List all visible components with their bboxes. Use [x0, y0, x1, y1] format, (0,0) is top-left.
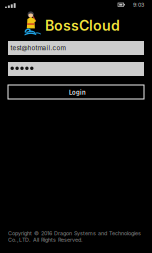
staticText: test@hotmail.com — [10, 44, 65, 52]
staticText: BossCloud — [45, 17, 120, 34]
staticText: Login — [69, 89, 86, 96]
button[interactable]: test@hotmail.com — [8, 41, 144, 55]
staticText: 9:03 — [133, 2, 144, 8]
button[interactable] — [8, 62, 144, 76]
button[interactable]: Login — [8, 85, 144, 99]
staticText: Copyright © 2016 Dragon Systems and Tech… — [8, 230, 141, 243]
